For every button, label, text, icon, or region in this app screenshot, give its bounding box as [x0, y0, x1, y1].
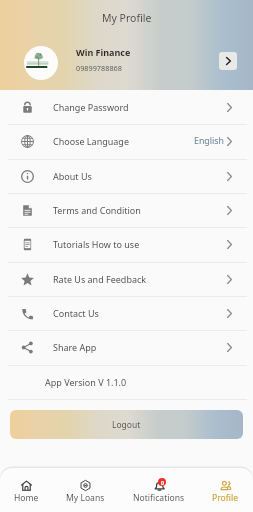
staticText: Contact Us	[53, 307, 227, 319]
staticText: Change Password	[53, 101, 227, 113]
staticText: Notifications	[133, 492, 185, 504]
staticText: Rate Us and Feedback	[53, 273, 227, 285]
staticText: About Us	[53, 170, 227, 182]
button[interactable]: Contact Us	[0, 296, 253, 330]
button[interactable]: Open profile details	[219, 52, 237, 70]
button[interactable]: About Us	[0, 159, 253, 193]
staticText: App Version V 1.1.0	[45, 376, 127, 388]
staticText: 0	[161, 479, 164, 486]
button[interactable]: Terms and Condition	[0, 193, 253, 227]
staticText: Home	[14, 492, 39, 504]
staticText: Logout	[112, 419, 141, 431]
button[interactable]: Profile	[211, 480, 240, 504]
staticText: My Loans	[66, 492, 105, 504]
staticText: English	[194, 135, 224, 147]
staticText: My Profile	[102, 11, 152, 25]
button[interactable]: Tutorials How to use	[0, 227, 253, 261]
staticText: Choose Language	[53, 135, 194, 147]
button[interactable]: Rate Us and Feedback	[0, 262, 253, 296]
button[interactable]: Choose Language	[0, 124, 253, 158]
button[interactable]: Change Password	[0, 90, 253, 124]
button[interactable]: Logout	[10, 410, 243, 439]
button[interactable]: My Loans	[65, 480, 106, 504]
button[interactable]: Home	[13, 480, 40, 504]
staticText: Terms and Condition	[53, 204, 227, 216]
button[interactable]: Share App	[0, 330, 253, 364]
staticText: Share App	[53, 341, 227, 353]
staticText: Win Finance	[76, 46, 131, 58]
staticText: Profile	[212, 492, 239, 504]
button[interactable]: 0	[132, 480, 186, 504]
staticText: 09899788868	[76, 63, 122, 73]
staticText: Tutorials How to use	[53, 238, 227, 250]
